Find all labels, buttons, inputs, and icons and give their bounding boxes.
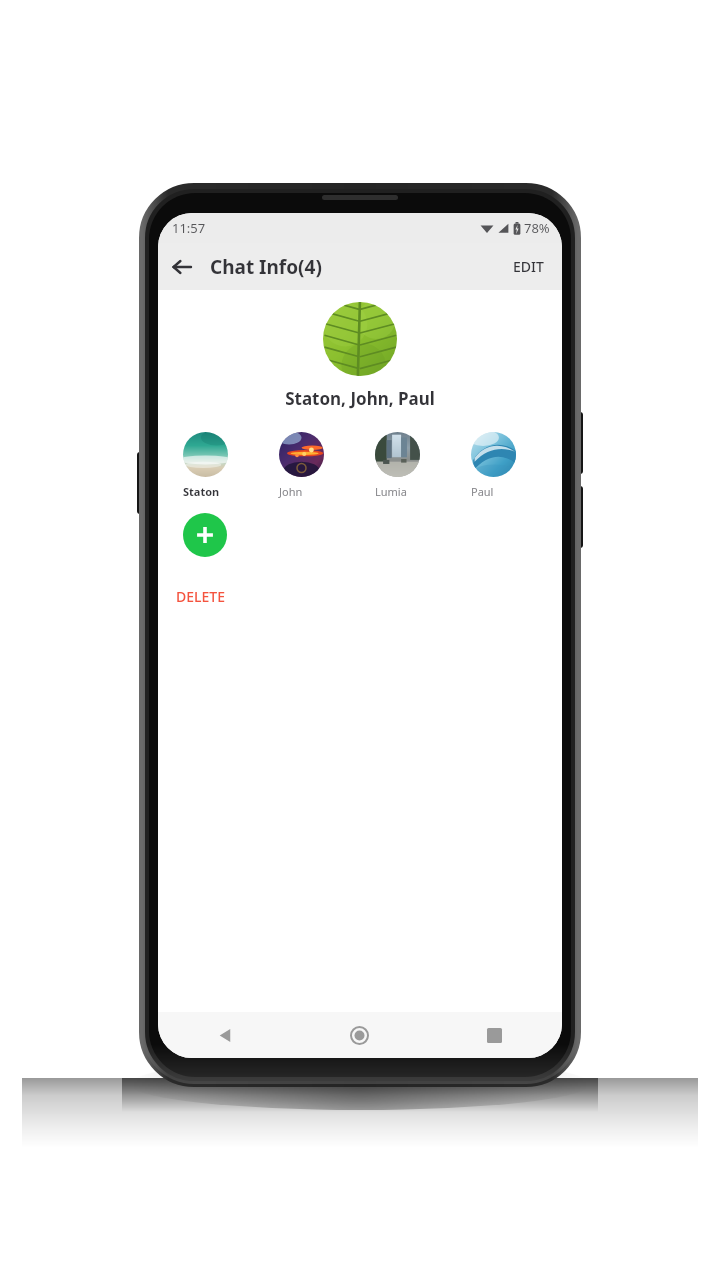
staticText: Lumia: [375, 484, 407, 499]
staticText: 11:57: [172, 219, 206, 237]
button[interactable]: Lumia: [360, 430, 456, 501]
button[interactable]: DELETE: [168, 581, 233, 612]
button[interactable]: Staton: [168, 430, 264, 501]
button[interactable]: Recent apps: [427, 1012, 562, 1058]
staticText: DELETE: [176, 587, 225, 606]
staticText: John: [279, 484, 303, 499]
staticText: Chat Info(4): [210, 254, 322, 280]
button[interactable]: Home: [292, 1012, 427, 1058]
staticText: 78%: [524, 219, 550, 237]
staticText: EDIT: [513, 257, 544, 276]
button[interactable]: Add member: [183, 513, 227, 557]
staticText: Staton: [183, 484, 220, 499]
button[interactable]: Back: [158, 243, 206, 290]
button[interactable]: Group photo: [323, 302, 397, 376]
button[interactable]: EDIT: [505, 249, 552, 284]
button[interactable]: Back: [158, 1012, 292, 1058]
staticText: Paul: [471, 484, 494, 499]
button[interactable]: Paul: [456, 430, 552, 501]
button[interactable]: John: [264, 430, 360, 501]
staticText: Staton, John, Paul: [285, 387, 435, 410]
